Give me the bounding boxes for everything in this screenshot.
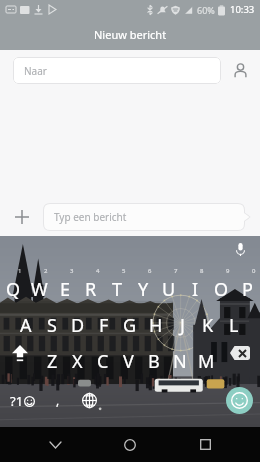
- staticText: W: [31, 277, 48, 302]
- staticText: D: [71, 313, 85, 338]
- staticText: ,: [56, 392, 60, 408]
- staticText: 5: [122, 267, 126, 275]
- staticText: 3: [70, 267, 74, 275]
- button[interactable]: Add attachment: [0, 198, 43, 236]
- staticText: M: [198, 349, 215, 374]
- staticText: Y: [138, 277, 149, 302]
- button[interactable]: X: [65, 334, 90, 370]
- staticText: X: [72, 349, 83, 374]
- button[interactable]: 1: [0, 262, 26, 298]
- staticText: L: [229, 313, 239, 338]
- button[interactable]: Recent apps: [185, 427, 225, 462]
- button[interactable]: [107, 370, 219, 427]
- staticText: Naar: [24, 64, 47, 78]
- button[interactable]: L: [221, 298, 247, 334]
- staticText: K: [202, 313, 214, 338]
- button[interactable]: 5: [104, 262, 130, 298]
- button[interactable]: Typ een bericht: [43, 203, 251, 231]
- button[interactable]: 3: [52, 262, 78, 298]
- staticText: Typ een bericht: [54, 210, 127, 224]
- staticText: Z: [47, 349, 58, 374]
- staticText: U: [162, 277, 176, 302]
- staticText: 6: [148, 267, 152, 275]
- button[interactable]: Voice input: [230, 239, 250, 259]
- button[interactable]: B: [141, 334, 167, 370]
- staticText: O: [214, 277, 229, 302]
- staticText: Q: [6, 277, 21, 302]
- staticText: R: [85, 277, 97, 302]
- staticText: 7: [174, 267, 178, 275]
- button[interactable]: Back: [35, 427, 75, 462]
- button[interactable]: Backspace: [219, 334, 260, 370]
- button[interactable]: Send: [219, 370, 260, 427]
- staticText: V: [123, 349, 134, 374]
- button[interactable]: Change language: [71, 370, 107, 427]
- staticText: C: [97, 349, 109, 374]
- staticText: J: [180, 313, 185, 338]
- staticText: 8: [200, 267, 204, 275]
- button[interactable]: 6: [130, 262, 156, 298]
- button[interactable]: Pick contact: [221, 50, 260, 90]
- button[interactable]: G: [117, 298, 143, 334]
- button[interactable]: S: [39, 298, 65, 334]
- button[interactable]: 4: [78, 262, 104, 298]
- staticText: T: [112, 277, 123, 302]
- button[interactable]: F: [91, 298, 117, 334]
- staticText: 0: [252, 267, 256, 275]
- button[interactable]: Z: [40, 334, 65, 370]
- button[interactable]: C: [90, 334, 115, 370]
- staticText: 9: [226, 267, 230, 275]
- staticText: ?1: [10, 392, 24, 410]
- button[interactable]: ,: [45, 370, 71, 427]
- staticText: 2: [44, 267, 48, 275]
- button[interactable]: 9: [208, 262, 234, 298]
- button[interactable]: H: [143, 298, 169, 334]
- button[interactable]: Naar: [13, 57, 221, 84]
- staticText: I: [192, 277, 199, 302]
- button[interactable]: A: [13, 298, 39, 334]
- button[interactable]: ?1: [0, 370, 45, 427]
- button[interactable]: 7: [156, 262, 182, 298]
- button[interactable]: Home: [110, 427, 150, 462]
- button[interactable]: K: [195, 298, 221, 334]
- staticText: 1: [18, 267, 22, 275]
- staticText: 4: [96, 267, 100, 275]
- staticText: 10:33: [230, 3, 255, 16]
- button[interactable]: M: [193, 334, 219, 370]
- staticText: N: [173, 349, 187, 374]
- button[interactable]: N: [167, 334, 193, 370]
- staticText: E: [60, 277, 71, 302]
- button[interactable]: 8: [182, 262, 208, 298]
- button[interactable]: D: [65, 298, 91, 334]
- staticText: S: [47, 313, 57, 338]
- staticText: F: [99, 313, 109, 338]
- staticText: B: [148, 349, 160, 374]
- staticText: P: [242, 277, 253, 302]
- staticText: A: [20, 313, 32, 338]
- staticText: H: [149, 313, 163, 338]
- button[interactable]: Shift: [0, 334, 40, 370]
- button[interactable]: 2: [26, 262, 52, 298]
- staticText: 60%: [197, 4, 215, 16]
- staticText: Nieuw bericht: [94, 27, 167, 42]
- button[interactable]: V: [115, 334, 141, 370]
- button[interactable]: J: [169, 298, 195, 334]
- staticText: G: [123, 313, 137, 338]
- button[interactable]: 0: [234, 262, 260, 298]
